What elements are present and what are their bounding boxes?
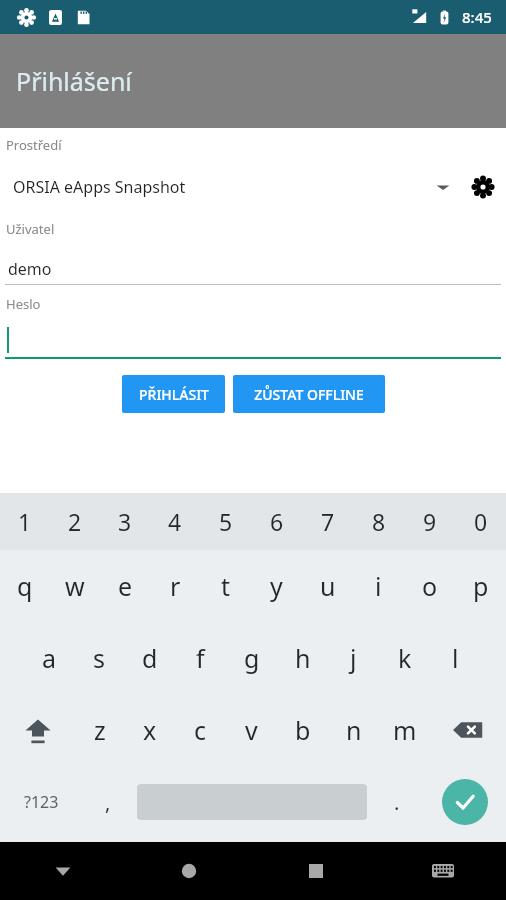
staticText: PŘIHLÁSIT [139,385,209,404]
staticText: h [295,641,311,675]
button[interactable]: Settings [466,170,500,204]
button[interactable]: ?123 [0,766,82,838]
button[interactable]: . [371,766,423,838]
staticText: l [452,641,459,675]
button[interactable]: PŘIHLÁSIT [122,375,225,413]
staticText: demo [8,258,52,280]
staticText: 3 [118,506,132,537]
button[interactable]: 7 [302,493,353,550]
staticText: f [196,641,205,675]
staticText: b [295,713,311,747]
button[interactable]: 0 [455,493,506,550]
staticText: ?123 [24,791,59,813]
button[interactable]: r [150,550,200,622]
button[interactable]: y [251,550,302,622]
button[interactable]: a [24,622,74,694]
button[interactable]: l [430,622,481,694]
button[interactable]: b [277,694,328,766]
staticText: g [244,641,260,675]
staticText: q [17,569,33,603]
staticText: ZŮSTAT OFFLINE [254,385,364,404]
staticText: 8 [372,506,386,537]
button[interactable]: Home [126,842,252,900]
staticText: u [320,569,336,603]
button[interactable]: 1 [0,493,50,550]
staticText: 2 [68,506,82,537]
staticText: Heslo [6,295,41,313]
staticText: ORSIA eApps Snapshot [13,176,434,198]
button[interactable]: Recents [252,842,379,900]
staticText: 1 [18,506,32,537]
staticText: Přihlášení [16,64,132,98]
button[interactable]: e [100,550,150,622]
button[interactable]: x [125,694,175,766]
button[interactable]: j [328,622,379,694]
button[interactable]: 3 [100,493,150,550]
staticText: 0 [474,506,488,537]
staticText: i [375,569,382,603]
staticText: j [350,641,357,675]
staticText: p [473,569,489,603]
staticText: m [393,713,417,747]
staticText: r [170,569,181,603]
button[interactable]: g [226,622,277,694]
button[interactable]: u [302,550,353,622]
button[interactable]: 9 [404,493,455,550]
staticText: . [394,789,400,816]
staticText: v [245,713,258,747]
button[interactable]: q [0,550,50,622]
button[interactable]: i [353,550,404,622]
staticText: 9 [423,506,437,537]
button[interactable]: 4 [150,493,200,550]
staticText: t [221,569,231,603]
button[interactable]: Keyboard [379,842,506,900]
staticText: c [194,713,207,747]
button[interactable]: m [379,694,430,766]
button[interactable]: demo [0,254,506,284]
staticText: x [143,713,157,747]
button[interactable]: n [328,694,379,766]
button[interactable]: Enter [423,766,506,838]
button[interactable]: v [226,694,277,766]
staticText: e [118,569,133,603]
button[interactable]: 6 [251,493,302,550]
button[interactable]: Back [0,842,126,900]
button[interactable]: , [82,766,133,838]
button[interactable]: d [124,622,175,694]
staticText: , [105,789,111,816]
staticText: Uživatel [6,220,55,238]
button[interactable]: k [379,622,430,694]
button[interactable]: Shift [0,694,75,766]
staticText: Prostředí [6,136,62,154]
staticText: s [93,641,105,675]
button[interactable]: 5 [200,493,251,550]
button[interactable]: t [200,550,251,622]
staticText: 4 [168,506,182,537]
staticText: 8:45 [462,7,492,27]
button[interactable]: c [175,694,226,766]
staticText: d [142,641,158,675]
staticText: z [94,713,106,747]
staticText: o [422,569,438,603]
staticText: 7 [321,506,335,537]
button[interactable]: ORSIA eApps Snapshot [0,170,506,204]
button[interactable]: ZŮSTAT OFFLINE [233,375,385,413]
staticText: w [65,569,85,603]
button[interactable]: 8 [353,493,404,550]
staticText: y [270,569,283,603]
staticText: 6 [270,506,284,537]
staticText: k [398,641,412,675]
button[interactable]: 2 [50,493,100,550]
button[interactable]: Backspace [430,694,506,766]
staticText: 5 [219,506,233,537]
button[interactable]: z [75,694,125,766]
staticText: n [346,713,362,747]
button[interactable] [0,323,506,357]
button[interactable]: h [277,622,328,694]
button[interactable]: f [175,622,226,694]
button[interactable]: w [50,550,100,622]
button[interactable]: s [74,622,124,694]
button[interactable]: p [455,550,506,622]
button[interactable]: o [404,550,455,622]
